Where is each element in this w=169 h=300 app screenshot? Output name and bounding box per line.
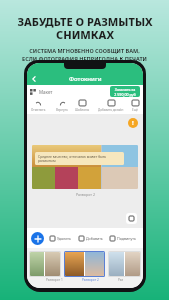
button[interactable]: Заказать за 2 590,00 руб <box>110 86 140 97</box>
staticText: Раз <box>118 278 124 282</box>
button[interactable]: Вернуть <box>56 100 68 112</box>
button[interactable]: Добавить дизайн <box>98 100 124 112</box>
staticText: Добавить <box>86 236 103 241</box>
staticText: Разворот 1 <box>46 278 63 282</box>
button[interactable]: Добавить <box>79 236 103 241</box>
button[interactable]: Предупреждение <box>128 118 138 128</box>
button[interactable]: Удалить <box>50 236 72 241</box>
staticText: Макет <box>39 89 53 95</box>
button[interactable]: Комментарий <box>126 213 137 224</box>
button[interactable]: Ещё <box>132 100 139 112</box>
staticText: Добавить дизайн <box>98 108 124 112</box>
button[interactable]: Добавить <box>31 232 44 245</box>
staticText: Отменить <box>31 108 46 112</box>
staticText: Вернуть <box>56 108 68 112</box>
staticText: СИСТЕМА МГНОВЕННО СООБЩИТ ВАМ, ЕСЛИ ФОТО… <box>22 47 147 63</box>
button[interactable] <box>29 251 61 277</box>
staticText: Фотокниги <box>69 75 102 83</box>
staticText: Шаблоны <box>75 108 90 112</box>
staticText: Заказать за 2 590,00 руб <box>114 87 136 97</box>
button[interactable] <box>64 251 105 277</box>
staticText: Разворот 2 <box>76 192 95 197</box>
button[interactable] <box>108 251 141 277</box>
staticText: Среднее качество, отпечаток может быть р… <box>38 154 121 163</box>
button[interactable]: Подвинуть <box>110 236 136 241</box>
staticText: Разворот 2 <box>82 278 99 282</box>
staticText: ЗАБУДЬТЕ О РАЗМЫТЫХ СНИМКАХ <box>17 14 153 42</box>
staticText: Подвинуть <box>117 236 136 241</box>
button[interactable]: Назад <box>27 72 41 85</box>
staticText: Удалить <box>57 236 72 241</box>
button[interactable]: Шаблоны <box>75 100 90 112</box>
button[interactable]: Отменить <box>31 100 46 112</box>
staticText: ! <box>132 119 134 127</box>
staticText: Ещё <box>132 108 139 112</box>
